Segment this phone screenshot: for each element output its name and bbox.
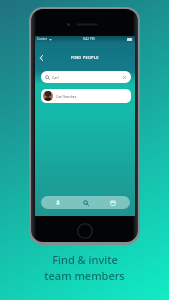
button[interactable]: Clear search <box>122 75 127 80</box>
button[interactable]: Carl Sanchez <box>41 89 131 103</box>
staticText: Carl <box>52 75 59 80</box>
button[interactable]: Search <box>75 196 97 209</box>
staticText: FIND PEOPLE <box>71 55 99 60</box>
staticText: 8:42 PM <box>83 37 95 41</box>
button[interactable]: Carl <box>41 71 131 83</box>
button[interactable]: Back <box>37 53 47 63</box>
button[interactable]: Calendar <box>102 196 124 209</box>
staticText: Find & invite <box>52 252 118 267</box>
staticText: Carl Sanchez <box>56 94 77 99</box>
staticText: Carrier <box>37 37 48 41</box>
button[interactable]: People <box>47 196 69 209</box>
staticText: team members <box>44 268 125 283</box>
